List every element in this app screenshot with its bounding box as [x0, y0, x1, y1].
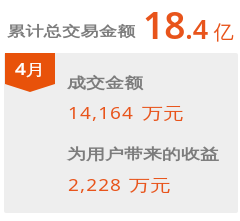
staticText: 万元	[129, 176, 171, 196]
button[interactable]: 4月	[5, 53, 55, 92]
staticText: 14,164	[68, 102, 135, 124]
staticText: 2,228	[68, 174, 123, 196]
staticText: 18.4 亿	[143, 0, 234, 49]
staticText: 为用户带来的收益	[67, 145, 219, 163]
staticText: 成交金额	[67, 74, 143, 92]
staticText: 4月	[15, 58, 45, 80]
staticText: 万元	[142, 104, 184, 124]
staticText: 累计总交易金额	[7, 23, 136, 40]
